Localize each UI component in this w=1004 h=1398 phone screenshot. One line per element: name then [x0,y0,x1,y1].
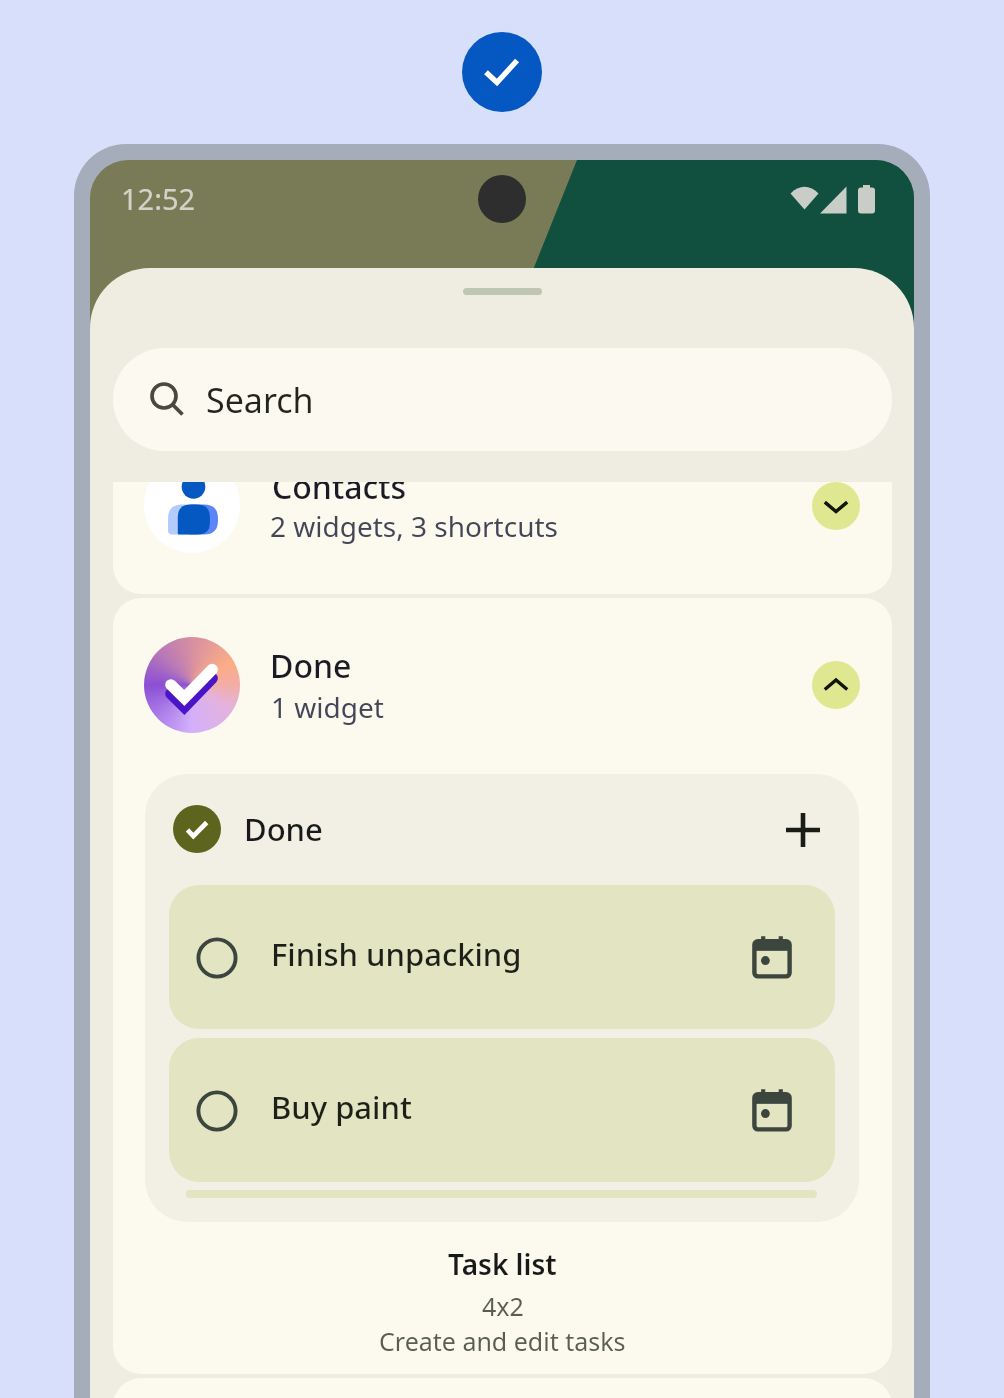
staticText: Finish unpacking [271,933,522,975]
staticText: 2 widgets, 3 shortcuts [270,507,558,545]
button[interactable]: Tasks app icon [462,32,542,112]
button[interactable]: Done [145,774,859,1222]
button[interactable]: Contacts [113,482,892,594]
staticText: Done [244,808,323,850]
other: Schedule [750,1088,794,1132]
button[interactable]: Expand Contacts [812,482,860,530]
staticText: Buy paint [271,1086,412,1128]
button[interactable]: Finish unpacking [169,885,835,1029]
button[interactable]: Add task [786,813,820,847]
staticText: 4x2 [482,1289,524,1323]
staticText: Task list [448,1245,557,1283]
button[interactable]: Done [113,598,892,774]
other: Schedule [750,935,794,979]
staticText: Create and edit tasks [379,1324,626,1358]
staticText: 1 widget [271,688,384,726]
staticText: Search [206,377,314,423]
button[interactable]: Collapse Done [812,661,860,709]
staticText: 12:52 [121,179,196,218]
staticText: Done [270,644,352,688]
button[interactable]: Buy paint [169,1038,835,1182]
staticText: Contacts [272,482,407,509]
button[interactable]: Search [113,348,892,451]
